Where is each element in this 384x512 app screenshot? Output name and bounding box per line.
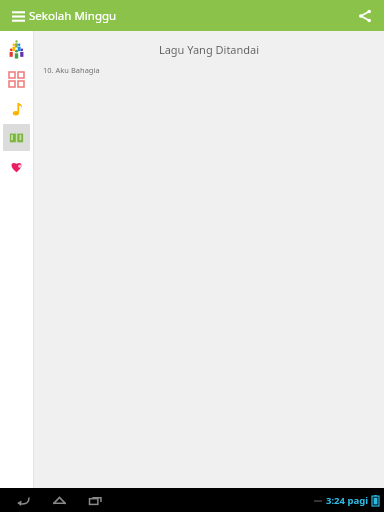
button[interactable]: Songs [3,95,30,122]
button[interactable]: Favourites [3,153,30,180]
button[interactable]: Grid [3,66,30,93]
button[interactable]: Open navigation drawer [6,4,30,28]
button[interactable]: Share [353,4,377,28]
button[interactable]: Home [46,488,72,512]
button[interactable]: Back [10,488,36,512]
staticText: Sekolah Minggu [29,8,117,24]
button[interactable]: Recent apps [82,488,108,512]
staticText: Lagu Yang Ditandai [34,42,384,57]
button[interactable]: 10. Aku Bahagia [34,64,384,79]
staticText: 3:24 pagi [326,494,368,507]
button[interactable]: Children [3,37,30,64]
staticText: 10. Aku Bahagia [43,65,100,75]
button[interactable]: Bible [3,124,30,151]
